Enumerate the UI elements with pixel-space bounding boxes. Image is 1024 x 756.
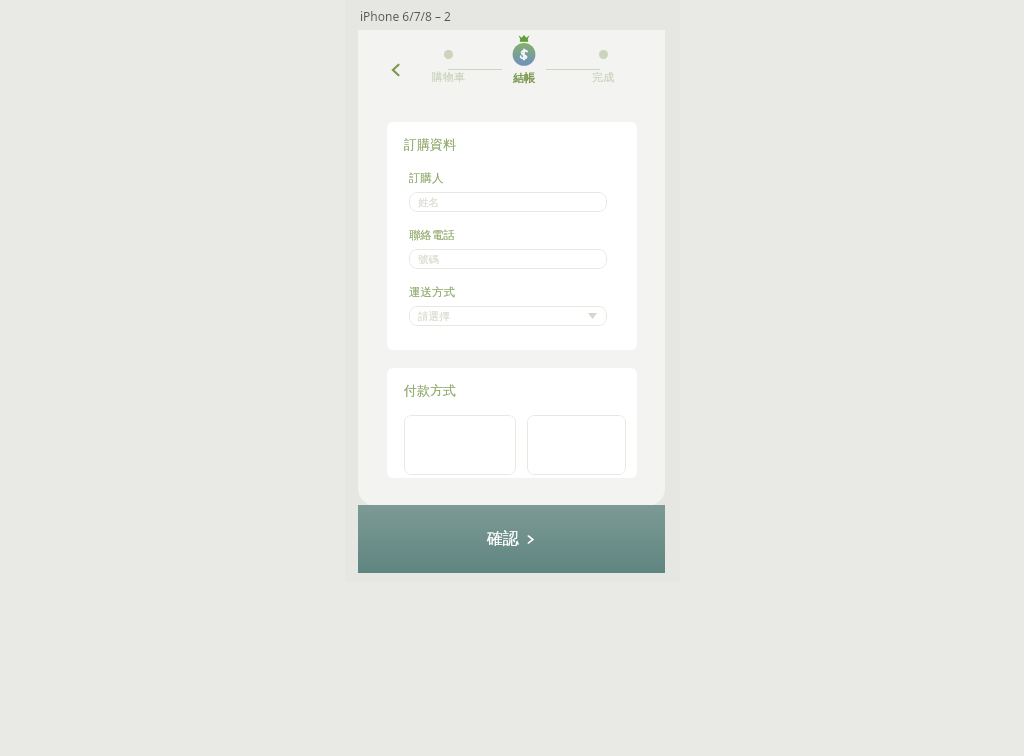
button[interactable]: Payment option 1 (404, 415, 516, 475)
staticText: 訂購資料 (404, 136, 456, 152)
button[interactable]: 請選擇 (409, 306, 607, 326)
staticText: 號碼 (418, 253, 439, 266)
button[interactable]: Payment option 2 (527, 415, 626, 475)
button[interactable]: 號碼 (409, 249, 607, 269)
staticText: 購物車 (432, 70, 465, 84)
staticText: 聯絡電話 (409, 228, 455, 242)
staticText: 運送方式 (409, 285, 455, 299)
button[interactable]: 購物車 (418, 50, 478, 84)
button[interactable]: 結帳 (494, 34, 554, 85)
button[interactable]: 姓名 (409, 192, 607, 212)
button[interactable]: 完成 (573, 50, 633, 84)
staticText: 訂購人 (409, 171, 444, 185)
staticText: 付款方式 (404, 382, 456, 398)
staticText: 請選擇 (418, 310, 450, 323)
staticText: 結帳 (513, 71, 535, 85)
staticText: 確認 (487, 529, 519, 549)
button[interactable]: Back (382, 56, 410, 84)
staticText: 姓名 (418, 196, 439, 209)
button[interactable]: 確認 (358, 505, 665, 573)
staticText: iPhone 6/7/8 – 2 (360, 8, 451, 24)
staticText: 完成 (592, 70, 614, 84)
